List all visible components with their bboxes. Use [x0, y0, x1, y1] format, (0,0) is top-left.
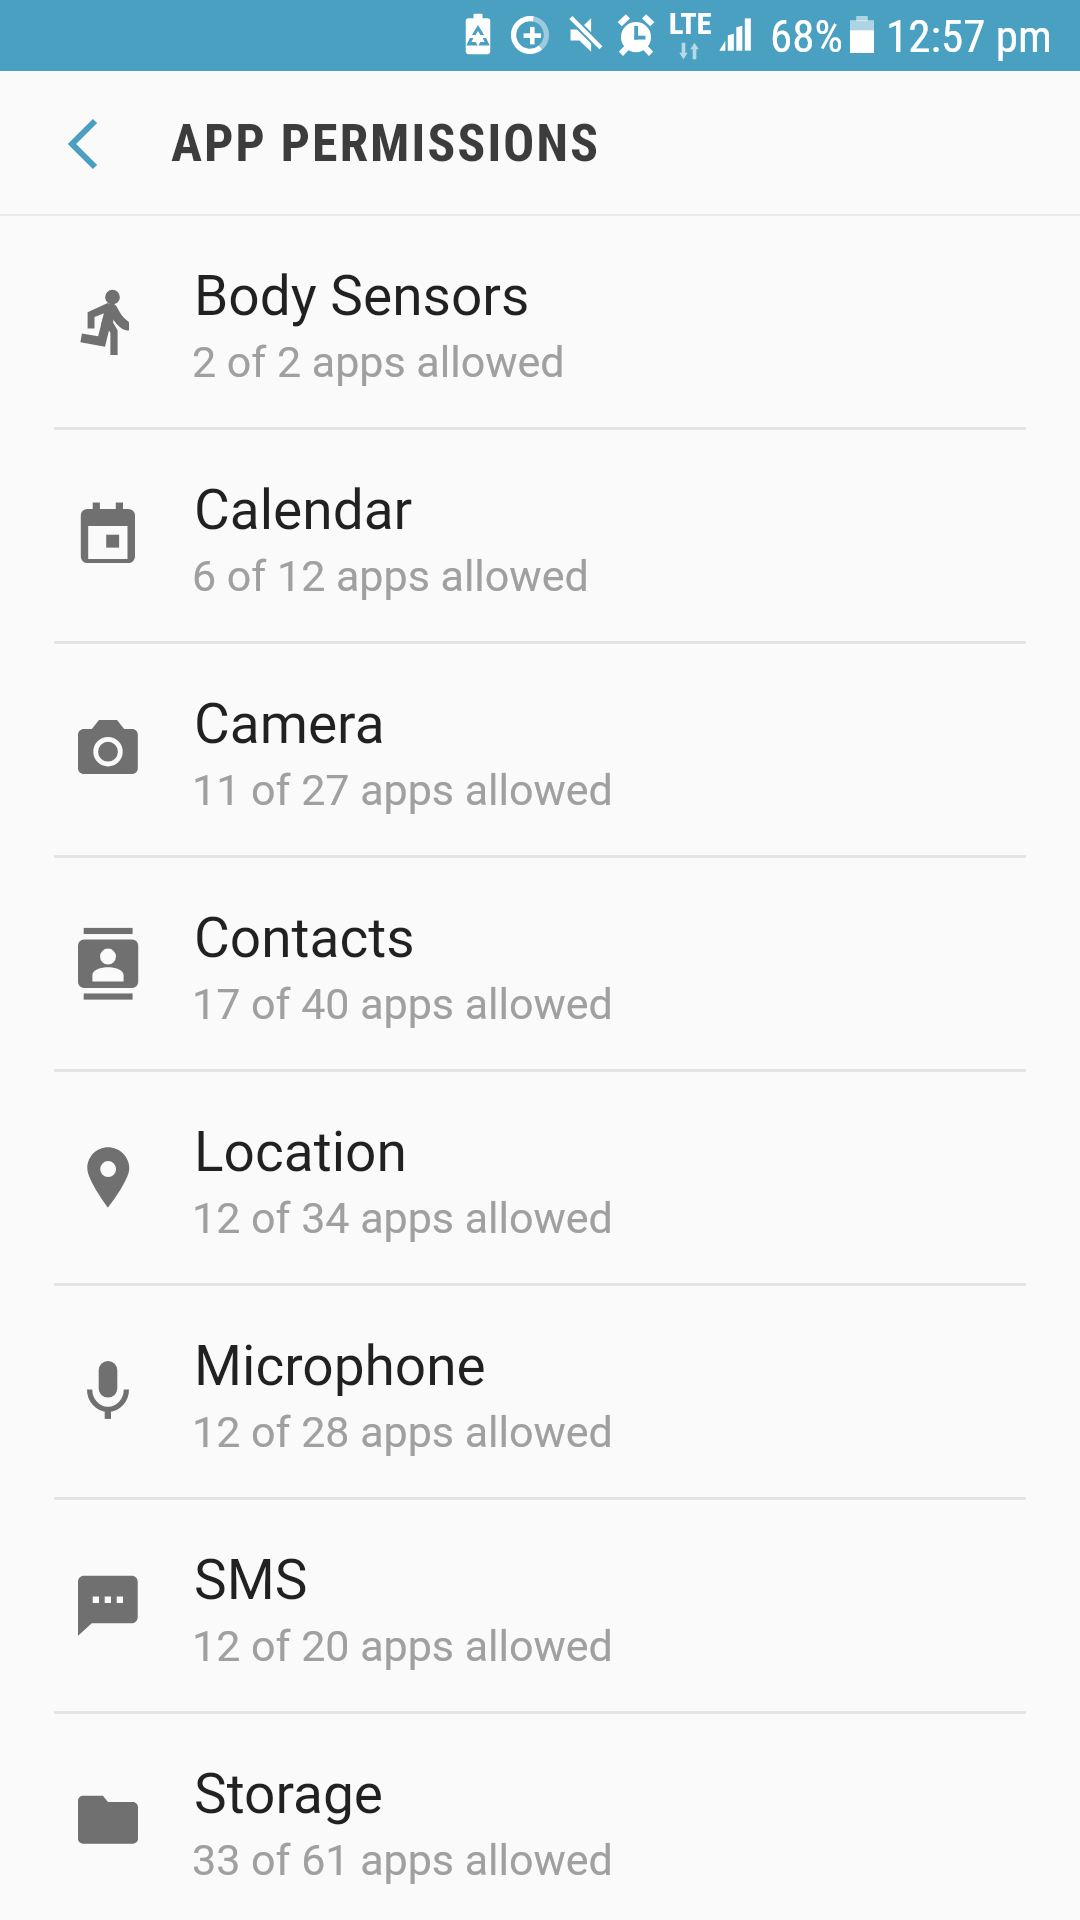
- staticText: 17 of 40 apps allowed: [192, 979, 613, 1029]
- button[interactable]: Storage: [0, 1714, 1080, 1920]
- staticText: 2 of 2 apps allowed: [192, 337, 565, 387]
- staticText: LTE: [669, 6, 712, 41]
- button[interactable]: SMS: [0, 1500, 1080, 1714]
- button[interactable]: Contacts: [0, 858, 1080, 1072]
- staticText: 12 of 20 apps allowed: [192, 1621, 613, 1671]
- staticText: 12:57 pm: [886, 10, 1052, 63]
- button[interactable]: Location: [0, 1072, 1080, 1286]
- button[interactable]: Microphone: [0, 1286, 1080, 1500]
- button[interactable]: Body Sensors: [0, 216, 1080, 430]
- button[interactable]: Camera: [0, 644, 1080, 858]
- staticText: Body Sensors: [194, 264, 530, 328]
- button[interactable]: Navigate up: [0, 71, 152, 216]
- staticText: 68%: [770, 10, 843, 63]
- staticText: 6 of 12 apps allowed: [192, 551, 589, 601]
- staticText: Microphone: [194, 1334, 486, 1398]
- staticText: Location: [194, 1120, 407, 1184]
- button[interactable]: Calendar: [0, 430, 1080, 644]
- staticText: SMS: [194, 1548, 308, 1612]
- staticText: Camera: [194, 692, 385, 756]
- staticText: APP PERMISSIONS: [171, 113, 600, 174]
- staticText: 33 of 61 apps allowed: [192, 1835, 613, 1885]
- staticText: 11 of 27 apps allowed: [192, 765, 613, 815]
- staticText: Storage: [194, 1762, 384, 1826]
- staticText: 12 of 28 apps allowed: [192, 1407, 613, 1457]
- staticText: Calendar: [194, 478, 413, 542]
- staticText: Contacts: [194, 906, 415, 970]
- staticText: 12 of 34 apps allowed: [192, 1193, 613, 1243]
